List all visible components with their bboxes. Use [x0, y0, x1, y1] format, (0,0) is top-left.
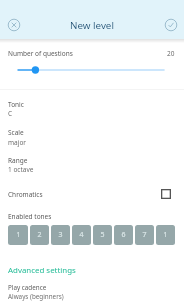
button[interactable]: 6 [114, 225, 133, 245]
staticText: Advanced settings [8, 265, 76, 276]
staticText: 1 [163, 230, 168, 240]
staticText: 1 [16, 230, 21, 240]
button[interactable]: 1 [156, 225, 175, 245]
button[interactable]: Chromatics [0, 186, 184, 202]
staticText: Number of questions [8, 49, 73, 58]
staticText: Scale [8, 128, 24, 137]
staticText: Always (beginners) [8, 292, 64, 301]
button[interactable]: 3 [51, 225, 70, 245]
staticText: 1 octave [8, 165, 34, 174]
staticText: C [8, 109, 13, 118]
staticText: 4 [79, 230, 84, 240]
button[interactable]: Close [3, 14, 25, 36]
staticText: 20 [167, 49, 175, 58]
button[interactable]: Advanced settings [8, 263, 76, 274]
button[interactable]: Confirm [160, 14, 182, 36]
staticText: New level [70, 19, 114, 32]
staticText: 6 [121, 230, 126, 240]
staticText: 7 [142, 230, 147, 240]
staticText: 2 [37, 230, 42, 240]
button[interactable]: 5 [93, 225, 112, 245]
staticText: Chromatics [8, 190, 43, 199]
staticText: Range [8, 156, 28, 165]
button[interactable]: 1 [8, 225, 28, 245]
staticText: Enabled tones [8, 212, 52, 221]
staticText: Play cadence [8, 283, 47, 292]
button[interactable]: 4 [72, 225, 91, 245]
staticText: 3 [58, 230, 63, 240]
staticText: Tonic [8, 100, 24, 109]
button[interactable]: 7 [135, 225, 154, 245]
staticText: major [8, 138, 27, 147]
button[interactable]: Number of questions slider [0, 62, 184, 78]
staticText: 5 [100, 230, 105, 240]
button[interactable]: 2 [30, 225, 49, 245]
